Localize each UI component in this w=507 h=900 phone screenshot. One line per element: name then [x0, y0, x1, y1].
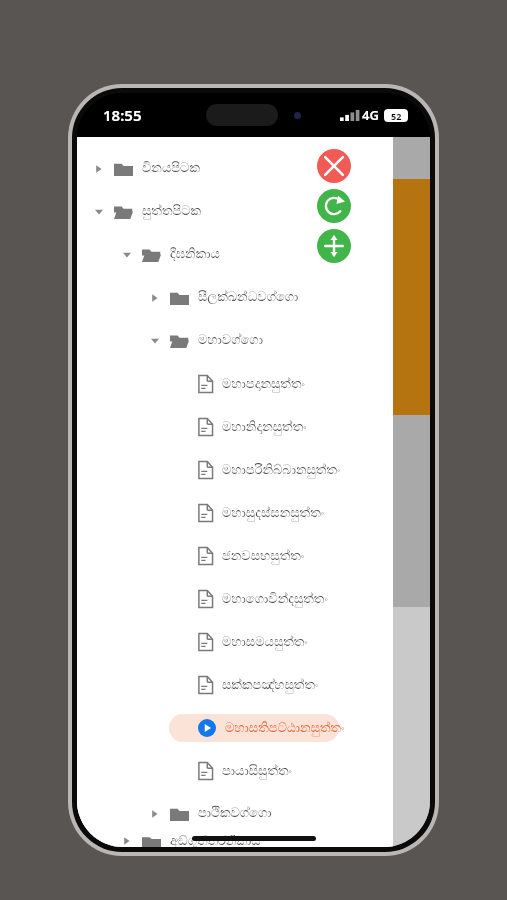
- staticText: මහාසමයසුත්තං: [222, 636, 308, 649]
- staticText: පායාසිසුත්තං: [222, 765, 292, 778]
- staticText: මහාපරිනිබ්බානසුත්තං: [222, 464, 341, 477]
- button[interactable]: Move: [317, 229, 351, 263]
- staticText: ජනවසභසුත්තං: [222, 550, 305, 563]
- staticText: සක්කපඤ්හසුත්තං: [222, 679, 319, 692]
- button[interactable]: මහාසුදස්සනසුත්තං: [77, 491, 393, 534]
- button[interactable]: Close: [317, 149, 351, 183]
- button[interactable]: ජනවසභසුත්තං: [77, 534, 393, 577]
- staticText: මහාගොවින්දසුත්තං: [222, 593, 328, 606]
- button[interactable]: Refresh: [317, 189, 351, 223]
- staticText: විනයපිටක: [142, 162, 200, 175]
- button[interactable]: මහාපදානසුත්තං: [77, 362, 393, 405]
- button[interactable]: මහාසතිපට්ඨානසුත්තං: [77, 706, 393, 749]
- button[interactable]: මහාගොවින්දසුත්තං: [77, 577, 393, 620]
- button[interactable]: පාථිකවග්ගො: [77, 792, 393, 835]
- button[interactable]: දීඝනිකාය: [77, 233, 393, 276]
- staticText: අඞ්ගුත්තරනිකාය: [170, 835, 261, 847]
- staticText: දීඝනිකාය: [170, 248, 220, 261]
- staticText: මහාසතිපට්ඨානසුත්තං: [225, 722, 345, 735]
- staticText: 4G: [362, 106, 379, 124]
- staticText: මහාසුදස්සනසුත්තං: [222, 507, 324, 520]
- staticText: සීලක්ඛන්ධවග්ගො: [198, 291, 299, 304]
- staticText: 52: [391, 110, 402, 122]
- button[interactable]: මහානිදානසුත්තං: [77, 405, 393, 448]
- button[interactable]: මහාපරිනිබ්බානසුත්තං: [77, 448, 393, 491]
- button[interactable]: පායාසිසුත්තං: [77, 749, 393, 792]
- button[interactable]: විනයපිටක: [77, 147, 393, 190]
- staticText: මහාපදානසුත්තං: [222, 378, 305, 391]
- staticText: සුත්තපිටක: [142, 205, 202, 218]
- staticText: මහාවග්ගො: [198, 334, 263, 347]
- button[interactable]: සුත්තපිටක: [77, 190, 393, 233]
- button[interactable]: මහාවග්ගො: [77, 319, 393, 362]
- staticText: මහානිදානසුත්තං: [222, 421, 307, 434]
- button[interactable]: සක්කපඤ්හසුත්තං: [77, 663, 393, 706]
- staticText: පාථිකවග්ගො: [198, 807, 272, 820]
- button[interactable]: මහාසමයසුත්තං: [77, 620, 393, 663]
- staticText: 18:55: [103, 105, 142, 125]
- button[interactable]: සීලක්ඛන්ධවග්ගො: [77, 276, 393, 319]
- button[interactable]: අඞ්ගුත්තරනිකාය: [77, 835, 393, 847]
